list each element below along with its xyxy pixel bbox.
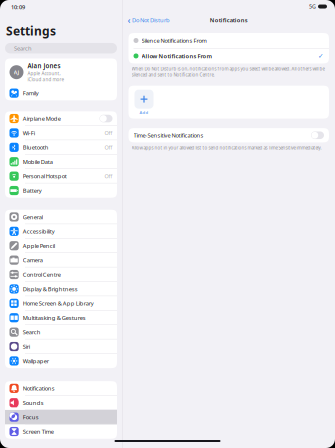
button[interactable]: Mobile Data — [5, 154, 117, 169]
button[interactable]: Siri — [5, 339, 117, 354]
button[interactable]: Wallpaper — [5, 354, 117, 368]
staticText: Off — [104, 129, 112, 137]
staticText: Battery — [23, 187, 42, 194]
button[interactable]: Family — [5, 86, 117, 100]
staticText: AJ — [13, 68, 19, 76]
staticText: ✓ — [318, 52, 324, 60]
button[interactable]: Screen Time — [5, 424, 117, 439]
button[interactable]: ‹ — [122, 11, 170, 29]
staticText: Do Not Disturb — [132, 16, 170, 24]
staticText: Mobile Data — [23, 158, 53, 165]
staticText: Airplane Mode — [23, 115, 61, 122]
staticText: Display & Brightness — [23, 285, 78, 293]
staticText: 10:09 — [11, 3, 25, 11]
staticText: Home Screen & App Library — [23, 299, 94, 307]
staticText: Allow Notifications From — [141, 52, 212, 60]
button[interactable]: Apple Pencil — [5, 238, 117, 253]
staticText: Notifications — [210, 16, 248, 24]
button[interactable]: Notifications — [5, 381, 117, 395]
button[interactable]: Multitasking & Gestures — [5, 310, 117, 325]
staticText: Add — [139, 109, 148, 115]
staticText: Settings — [6, 23, 56, 39]
button[interactable]: Battery — [5, 183, 117, 198]
staticText: Wi-Fi — [23, 129, 35, 137]
staticText: Control Centre — [23, 271, 61, 278]
button[interactable]: AJ — [5, 58, 117, 86]
staticText: 5G — [309, 3, 316, 10]
button[interactable]: Wi-Fi — [5, 126, 117, 140]
button[interactable]: Sounds — [5, 395, 117, 410]
staticText: Multitasking & Gestures — [23, 314, 86, 321]
button[interactable]: Home Screen & App Library — [5, 296, 117, 310]
staticText: Camera — [23, 256, 43, 264]
button[interactable]: Focus — [5, 410, 117, 424]
staticText: Time-Sensitive Notifications — [133, 131, 203, 139]
staticText: Sounds — [23, 399, 44, 406]
staticText: Alan Jones — [27, 62, 60, 70]
button[interactable]: Add — [134, 90, 153, 115]
staticText: Personal Hotspot — [23, 172, 67, 180]
staticText: Accessibility — [23, 227, 55, 235]
button[interactable]: Silence Notifications From — [128, 33, 329, 48]
button[interactable]: Accessibility — [5, 224, 117, 238]
button[interactable]: Display & Brightness — [5, 282, 117, 296]
button[interactable]: Personal Hotspot — [5, 169, 117, 183]
button[interactable]: Airplane Mode — [5, 111, 117, 126]
staticText: Family — [23, 89, 39, 97]
button[interactable]: Search — [5, 325, 117, 339]
staticText: Screen Time — [23, 428, 54, 435]
button[interactable]: Control Centre — [5, 267, 117, 282]
staticText: Bluetooth — [23, 143, 49, 151]
staticText: Focus — [23, 413, 39, 421]
staticText: Silence Notifications From — [141, 37, 206, 44]
staticText: Off — [104, 172, 112, 180]
staticText: When Do Not Disturb is on, notifications… — [131, 66, 324, 78]
button[interactable]: Allow Notifications From — [128, 48, 329, 63]
staticText: Siri — [23, 343, 30, 350]
staticText: Wallpaper — [23, 357, 49, 365]
button[interactable]: Camera — [5, 253, 117, 267]
button[interactable]: Bluetooth — [5, 140, 117, 154]
staticText: Apple Account, iCloud and more — [27, 70, 64, 82]
staticText: Apple Pencil — [23, 242, 55, 249]
button[interactable]: General — [5, 210, 117, 224]
staticText: Search — [14, 44, 32, 52]
staticText: General — [23, 213, 43, 221]
staticText: Allow apps not in your allowed list to s… — [131, 145, 321, 151]
staticText: Notifications — [23, 384, 55, 392]
staticText: Off — [104, 144, 112, 151]
staticText: ‹ — [127, 14, 130, 26]
staticText: Search — [23, 328, 41, 336]
